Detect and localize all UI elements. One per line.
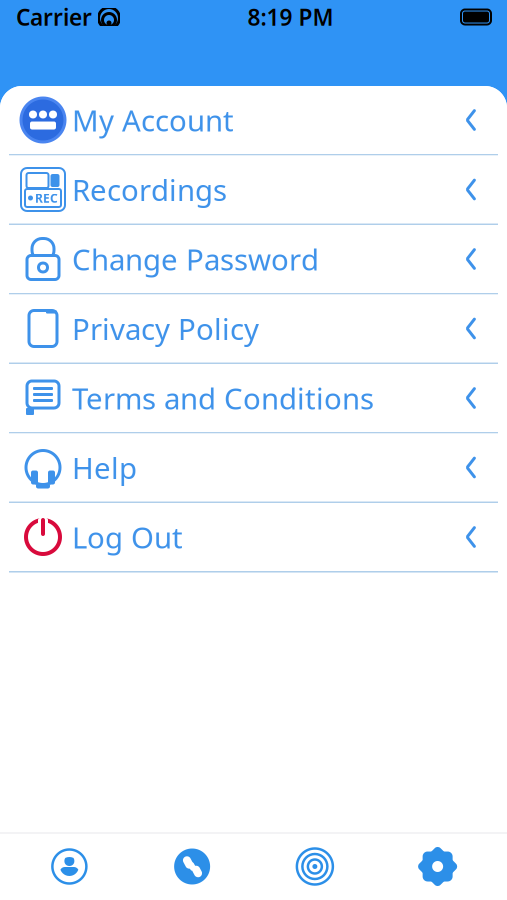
staticText: Change Password: [72, 239, 319, 278]
staticText: Privacy Policy: [72, 309, 259, 348]
staticText: My Account: [72, 100, 234, 139]
staticText: Carrier: [16, 2, 92, 32]
button[interactable]: Help: [0, 433, 507, 503]
button[interactable]: My Account: [0, 86, 507, 155]
staticText: REC: [35, 190, 58, 206]
button[interactable]: Profile: [8, 844, 131, 888]
staticText: 8:19 PM: [247, 2, 333, 32]
button[interactable]: Security: [253, 844, 376, 888]
button[interactable]: REC: [0, 155, 507, 225]
button[interactable]: Log Out: [0, 503, 507, 572]
button[interactable]: Privacy Policy: [0, 294, 507, 364]
button[interactable]: Calls: [131, 844, 254, 888]
button[interactable]: Settings: [376, 844, 499, 888]
button[interactable]: Change Password: [0, 225, 507, 294]
staticText: Log Out: [72, 517, 183, 556]
button[interactable]: Terms and Conditions: [0, 364, 507, 433]
staticText: Terms and Conditions: [72, 378, 374, 417]
staticText: Help: [72, 448, 137, 487]
staticText: Recordings: [72, 170, 227, 209]
